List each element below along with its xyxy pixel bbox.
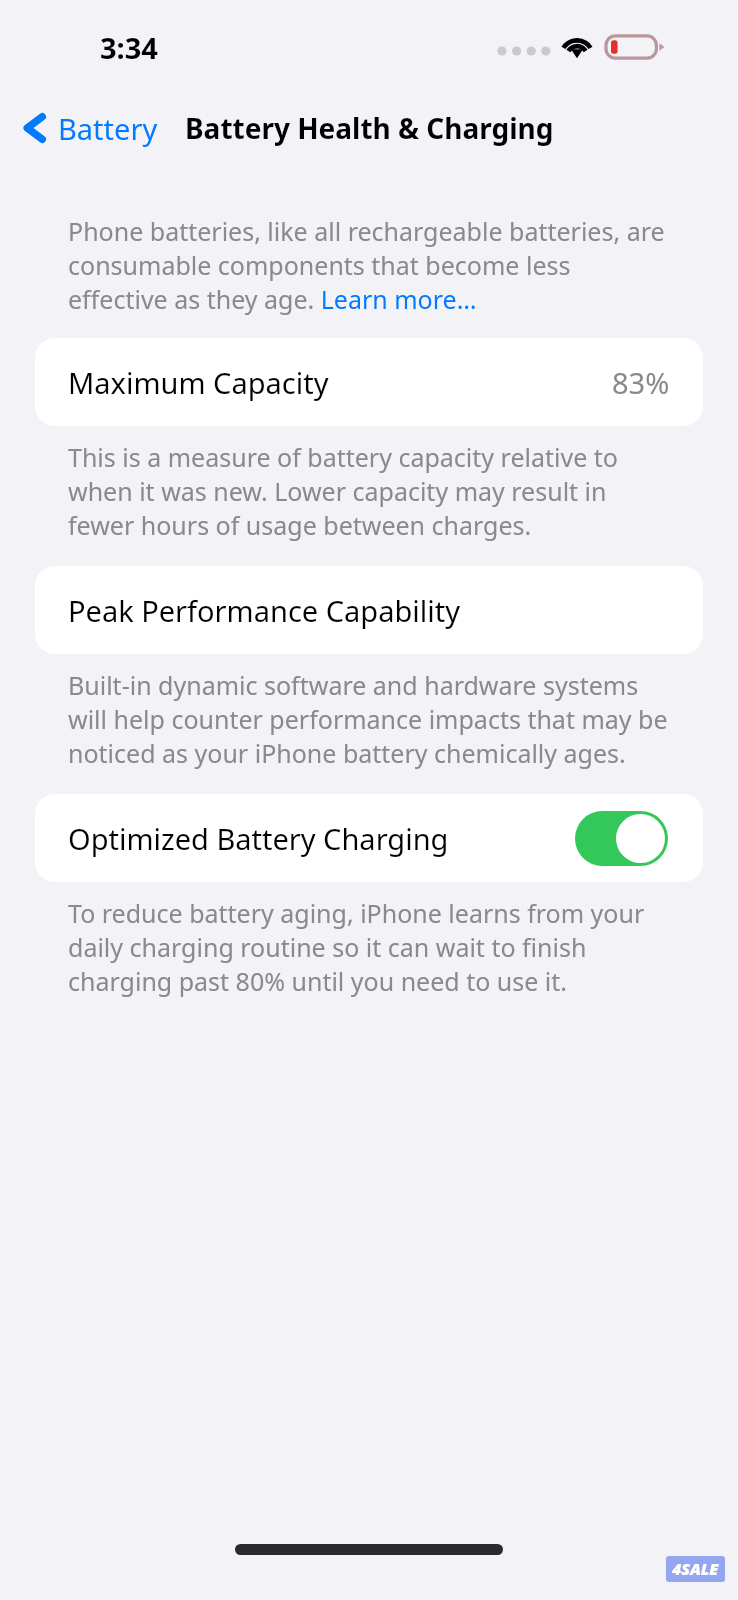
staticText: 3:34 — [100, 28, 158, 67]
staticText: To reduce battery aging, iPhone learns f… — [68, 896, 670, 998]
staticText: Phone batteries, like all rechargeable b… — [68, 214, 670, 316]
staticText: Built-in dynamic software and hardware s… — [68, 668, 670, 770]
button[interactable]: Optimized Battery Charging toggle, on — [575, 811, 668, 866]
button[interactable]: Maximum Capacity — [35, 338, 703, 426]
staticText: This is a measure of battery capacity re… — [68, 440, 670, 542]
button[interactable]: Battery — [18, 102, 162, 154]
button[interactable]: Peak Performance Capability — [35, 566, 703, 654]
staticText: Optimized Battery Charging — [68, 819, 449, 858]
button[interactable]: Optimized Battery Charging — [35, 794, 703, 882]
staticText: Battery — [58, 109, 158, 148]
staticText: 83% — [612, 363, 670, 402]
staticText: Peak Performance Capability — [68, 591, 460, 630]
staticText: Battery Health & Charging — [185, 109, 554, 147]
staticText: 4SALE — [672, 1558, 719, 1580]
staticText: Maximum Capacity — [68, 363, 329, 402]
